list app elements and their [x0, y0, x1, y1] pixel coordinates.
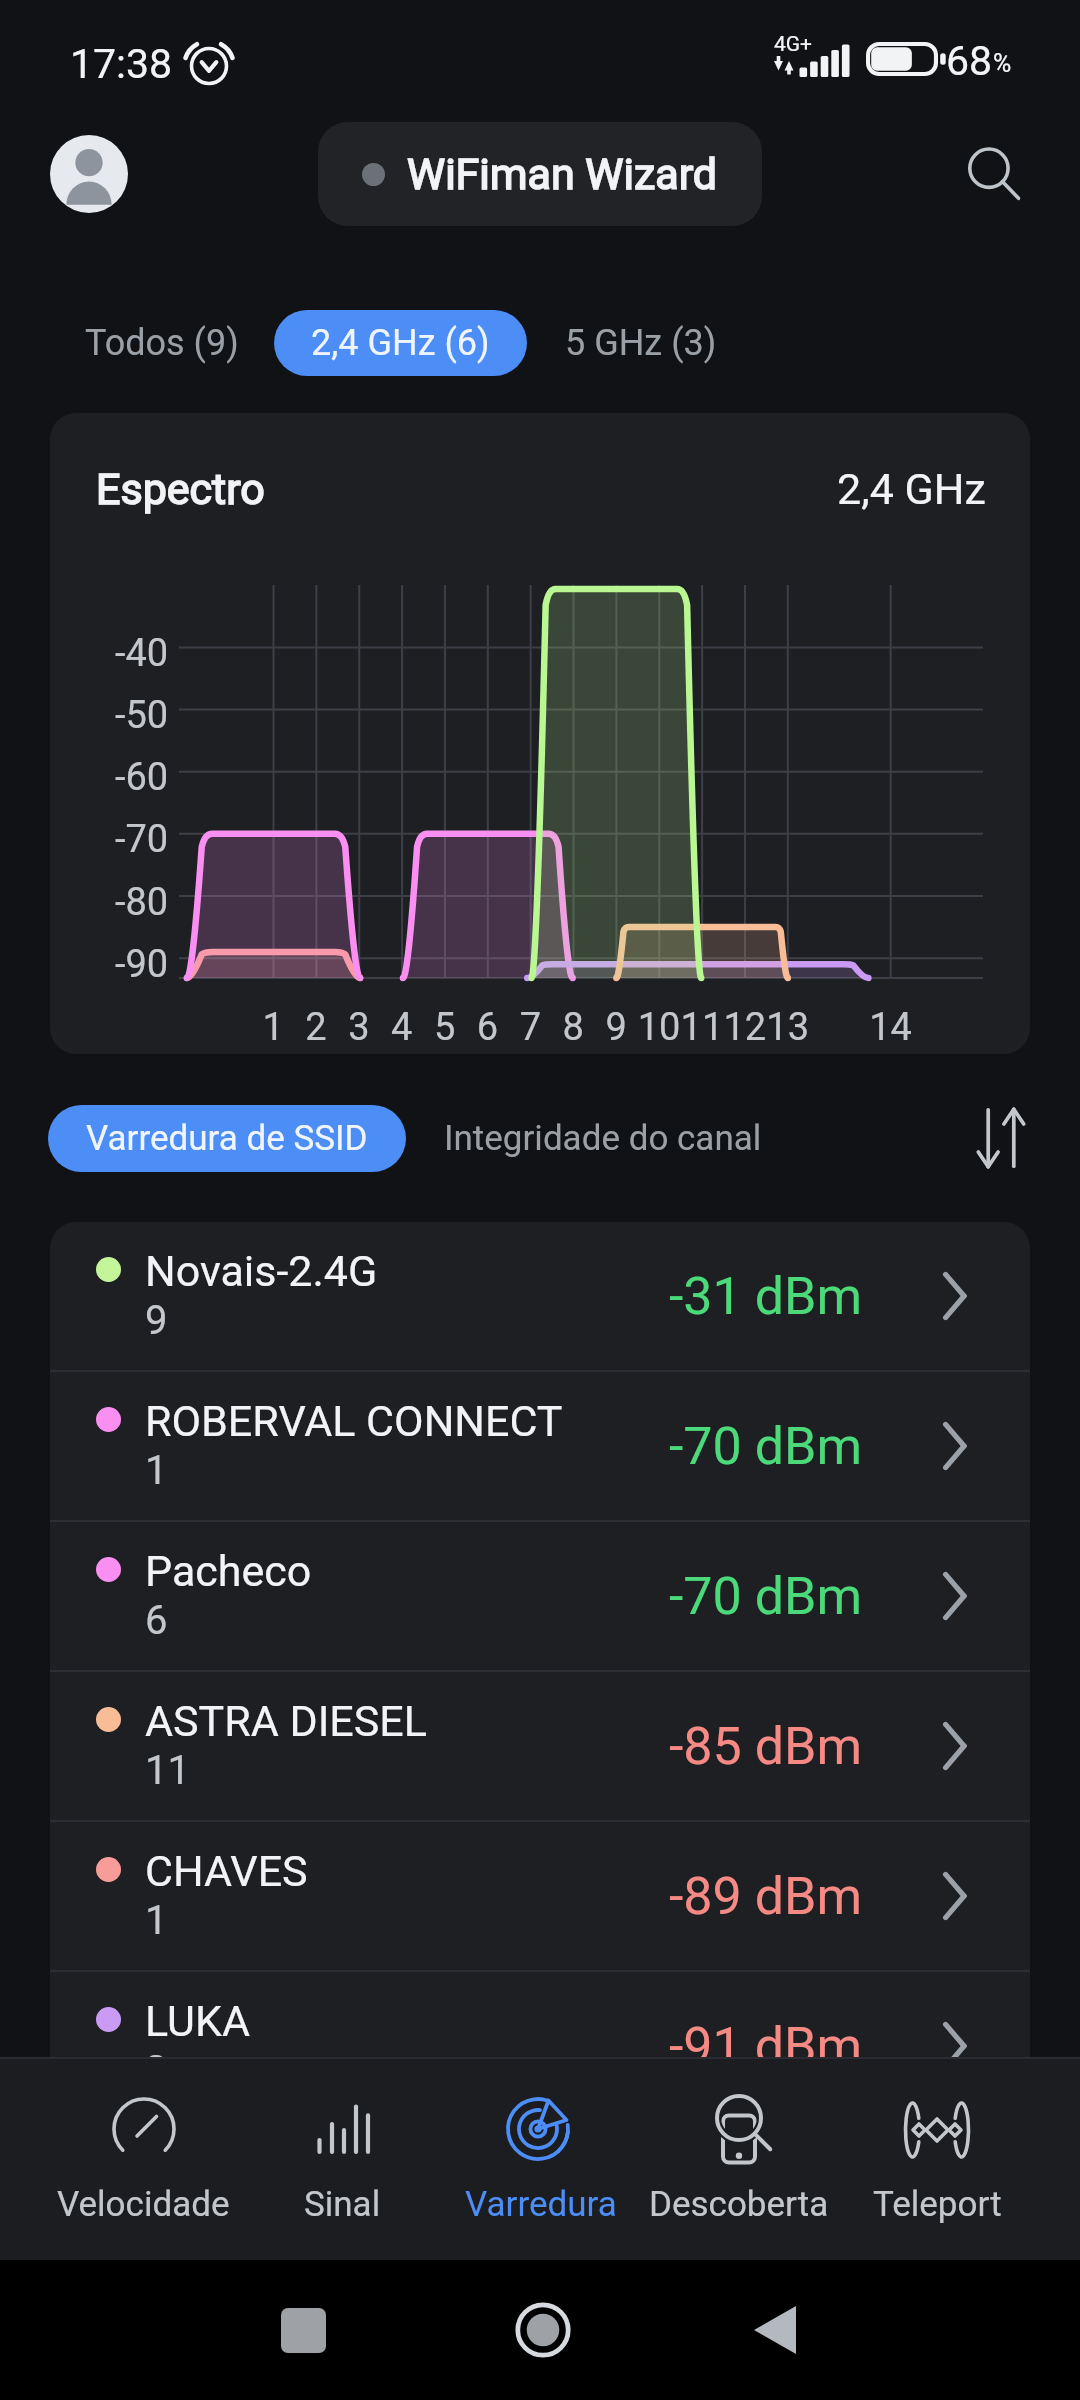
- staticText: 1: [145, 1447, 168, 1494]
- staticText: 4G+: [774, 32, 813, 57]
- staticText: 11: [145, 1747, 190, 1794]
- button[interactable]: 2,4 GHz (6): [274, 310, 527, 376]
- button[interactable]: Sinal: [243, 2059, 442, 2260]
- button[interactable]: Back: [752, 2305, 802, 2355]
- staticText: -91 dBm: [669, 2016, 863, 2077]
- button[interactable]: Home: [515, 2302, 571, 2358]
- staticText: Todos (9): [85, 322, 239, 364]
- button[interactable]: Varredura de SSID: [48, 1105, 406, 1172]
- staticText: WiFiman Wizard: [407, 149, 718, 199]
- button[interactable]: CHAVES: [50, 1822, 1030, 1970]
- staticText: Integridade do canal: [444, 1118, 762, 1159]
- staticText: 2,4 GHz (6): [311, 322, 490, 364]
- button[interactable]: Velocidade: [44, 2059, 243, 2260]
- button[interactable]: WiFiman Wizard: [318, 122, 762, 226]
- button[interactable]: ASTRA DIESEL: [50, 1672, 1030, 1820]
- button[interactable]: Recents: [281, 2308, 326, 2353]
- staticText: Sinal: [304, 2184, 381, 2225]
- staticText: Descoberta: [649, 2184, 829, 2225]
- staticText: 9: [145, 1297, 168, 1344]
- staticText: CHAVES: [145, 1846, 308, 1896]
- button[interactable]: Todos (9): [51, 310, 273, 376]
- staticText: 3: [145, 2047, 168, 2094]
- staticText: Espectro: [96, 464, 265, 514]
- button[interactable]: Varredura: [442, 2059, 640, 2260]
- staticText: Pacheco: [145, 1546, 312, 1596]
- staticText: -70 dBm: [669, 1416, 863, 1477]
- button[interactable]: LUKA: [50, 1972, 1030, 2120]
- button[interactable]: Search: [953, 134, 1033, 214]
- button[interactable]: Teleport: [838, 2059, 1036, 2260]
- button[interactable]: Pacheco: [50, 1522, 1030, 1670]
- staticText: ROBERVAL CONNECT: [145, 1396, 563, 1446]
- staticText: 6: [145, 1597, 168, 1644]
- staticText: -85 dBm: [669, 1716, 863, 1777]
- button[interactable]: Descoberta: [640, 2059, 838, 2260]
- button[interactable]: Profile: [50, 135, 128, 213]
- button[interactable]: Sort: [960, 1097, 1042, 1179]
- staticText: ASTRA DIESEL: [145, 1696, 427, 1746]
- button[interactable]: 5 GHz (3): [528, 310, 754, 376]
- staticText: 17:38: [70, 40, 173, 88]
- staticText: -70 dBm: [669, 1566, 863, 1627]
- staticText: %: [993, 49, 1012, 78]
- staticText: 2,4 GHz: [837, 464, 986, 514]
- staticText: Varredura: [465, 2184, 617, 2225]
- button[interactable]: ROBERVAL CONNECT: [50, 1372, 1030, 1520]
- staticText: -31 dBm: [669, 1266, 863, 1327]
- staticText: Novais-2.4G: [145, 1246, 378, 1296]
- staticText: Varredura de SSID: [86, 1118, 368, 1159]
- staticText: 68: [946, 37, 993, 81]
- button[interactable]: Integridade do canal: [414, 1105, 792, 1172]
- staticText: 5 GHz (3): [565, 322, 717, 364]
- button[interactable]: Novais-2.4G: [50, 1222, 1030, 1370]
- staticText: Velocidade: [57, 2184, 230, 2225]
- staticText: 1: [145, 1897, 168, 1944]
- staticText: -89 dBm: [669, 1866, 863, 1927]
- staticText: LUKA: [145, 1996, 250, 2046]
- staticText: Teleport: [873, 2184, 1002, 2225]
